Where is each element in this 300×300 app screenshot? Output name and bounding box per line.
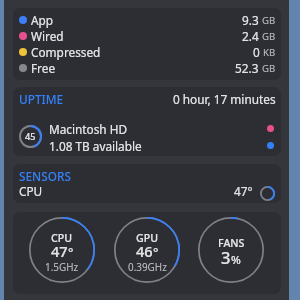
- button[interactable]: GPU: [114, 217, 180, 283]
- staticText: %: [231, 252, 241, 268]
- staticText: Compressed: [31, 44, 101, 60]
- staticText: GB: [262, 62, 276, 75]
- staticText: 45: [25, 130, 36, 143]
- button[interactable]: FANS: [198, 217, 264, 283]
- staticText: 52.3: [235, 60, 259, 76]
- staticText: CPU: [19, 183, 43, 199]
- staticText: 2.4: [242, 28, 259, 44]
- staticText: 3: [221, 246, 231, 268]
- button[interactable]: Wired: [19, 28, 276, 44]
- staticText: Macintosh HD: [49, 121, 128, 137]
- staticText: GB: [262, 30, 276, 43]
- staticText: 1.5GHz: [45, 260, 79, 273]
- staticText: 1.08 TB available: [49, 138, 142, 154]
- other: Macintosh HD usage 45%: [19, 125, 42, 148]
- button[interactable]: Compressed: [19, 44, 276, 60]
- staticText: KB: [263, 46, 276, 59]
- button[interactable]: App: [19, 12, 276, 28]
- staticText: °: [68, 244, 74, 261]
- staticText: GB: [262, 14, 276, 27]
- button[interactable]: CPU: [19, 182, 276, 199]
- button[interactable]: Free: [19, 60, 276, 76]
- staticText: 46: [136, 241, 153, 261]
- staticText: SENSORS: [19, 168, 71, 184]
- staticText: GPU: [136, 231, 158, 245]
- staticText: Wired: [31, 28, 64, 44]
- button[interactable]: Macintosh HD usage 45%: [19, 114, 276, 156]
- staticText: 0 hour, 17 minutes: [173, 91, 276, 107]
- staticText: FANS: [218, 236, 245, 250]
- staticText: °: [153, 244, 159, 261]
- staticText: 47: [51, 241, 68, 261]
- staticText: App: [31, 12, 54, 28]
- staticText: CPU: [51, 231, 73, 245]
- staticText: 9.3: [242, 12, 259, 28]
- staticText: UPTIME: [19, 91, 64, 107]
- staticText: Free: [31, 60, 56, 76]
- staticText: 0.39GHz: [128, 260, 167, 273]
- button[interactable]: CPU: [29, 217, 95, 283]
- staticText: 47°: [234, 183, 253, 199]
- other: CPU temperature gauge: [260, 186, 275, 201]
- staticText: 0: [253, 44, 260, 60]
